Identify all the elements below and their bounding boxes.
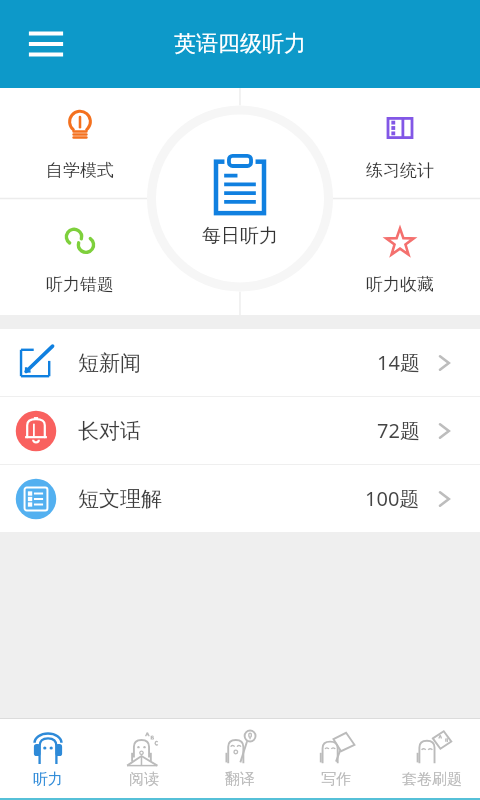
staticText: 100题 <box>365 485 420 512</box>
button[interactable]: 听力错题 <box>0 201 160 315</box>
button[interactable]: 练习统计 <box>320 88 480 201</box>
staticText: 套卷刷题 <box>402 770 462 789</box>
staticText: 翻译 <box>225 770 255 789</box>
staticText: 写作 <box>321 770 351 789</box>
button[interactable]: 短文理解 <box>0 465 480 532</box>
button[interactable]: Menu <box>18 16 74 72</box>
staticText: 听力 <box>33 770 63 789</box>
button[interactable]: 翻译 <box>192 719 288 798</box>
staticText: 阅读 <box>129 770 159 789</box>
staticText: 英语四级听力 <box>174 30 306 58</box>
button[interactable]: 听力收藏 <box>320 201 480 315</box>
staticText: 练习统计 <box>366 160 434 181</box>
button[interactable]: 每日听力 <box>165 125 315 275</box>
staticText: 14题 <box>377 349 420 376</box>
staticText: 每日听力 <box>202 224 278 248</box>
staticText: 听力错题 <box>46 274 114 295</box>
staticText: 自学模式 <box>46 160 114 181</box>
staticText: 长对话 <box>78 418 141 444</box>
staticText: 短新闻 <box>78 350 141 376</box>
button[interactable]: 套卷刷题 <box>384 719 480 798</box>
staticText: 短文理解 <box>78 486 162 512</box>
button[interactable]: 阅读 <box>96 719 192 798</box>
staticText: 听力收藏 <box>366 274 434 295</box>
button[interactable]: 短新闻 <box>0 329 480 396</box>
button[interactable]: 长对话 <box>0 397 480 464</box>
staticText: 72题 <box>377 417 420 444</box>
button[interactable]: 自学模式 <box>0 88 160 201</box>
button[interactable]: 听力 <box>0 719 96 798</box>
button[interactable]: 写作 <box>288 719 384 798</box>
